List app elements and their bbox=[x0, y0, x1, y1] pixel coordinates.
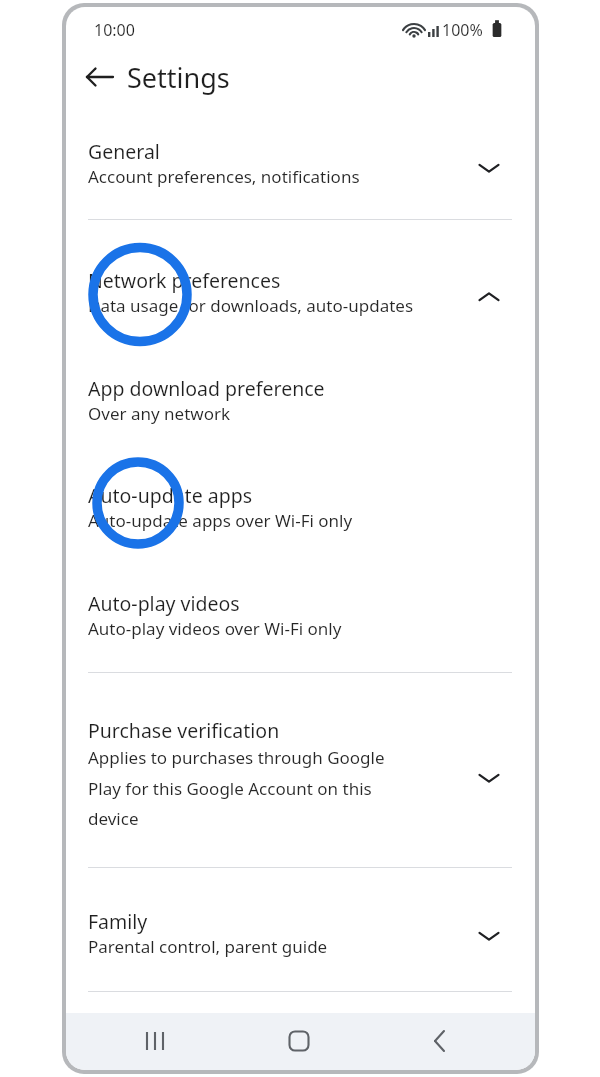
staticText: Auto-play videos bbox=[88, 590, 240, 617]
button[interactable]: Expand bbox=[469, 758, 509, 798]
staticText: App download preference bbox=[88, 375, 325, 402]
staticText: 10:00 bbox=[94, 19, 135, 41]
button[interactable]: Auto-play videos bbox=[66, 577, 535, 661]
staticText: Purchase verification bbox=[88, 717, 280, 744]
staticText: Auto-play videos over Wi-Fi only bbox=[88, 617, 342, 640]
staticText: General bbox=[88, 138, 160, 165]
staticText: Over any network bbox=[88, 402, 231, 425]
staticText: Parental control, parent guide bbox=[88, 935, 328, 958]
button[interactable]: Home bbox=[279, 1021, 319, 1061]
button[interactable]: Purchase verification bbox=[66, 704, 535, 850]
staticText: Auto-update apps bbox=[88, 482, 252, 509]
staticText: Network preferences bbox=[88, 267, 281, 294]
button[interactable]: Family bbox=[66, 895, 535, 979]
staticText: Applies to purchases through Google Play… bbox=[88, 746, 406, 830]
staticText: Settings bbox=[127, 59, 230, 96]
button[interactable]: Network preferences bbox=[66, 254, 535, 340]
staticText: Data usage for downloads, auto-updates bbox=[88, 294, 414, 317]
button[interactable]: Expand bbox=[469, 148, 509, 188]
button[interactable]: General bbox=[66, 125, 535, 213]
button[interactable]: Recents bbox=[135, 1021, 175, 1061]
button[interactable]: Auto-update apps bbox=[66, 469, 535, 553]
button[interactable]: Back bbox=[422, 1021, 462, 1061]
button[interactable]: Collapse bbox=[469, 277, 509, 317]
staticText: Family bbox=[88, 908, 148, 935]
staticText: Auto-update apps over Wi-Fi only bbox=[88, 509, 353, 532]
staticText: Account preferences, notifications bbox=[88, 165, 360, 188]
button[interactable]: App download preference bbox=[66, 362, 535, 446]
staticText: 100% bbox=[442, 19, 483, 41]
button[interactable]: Navigate up bbox=[80, 57, 120, 97]
button[interactable]: Expand bbox=[469, 916, 509, 956]
